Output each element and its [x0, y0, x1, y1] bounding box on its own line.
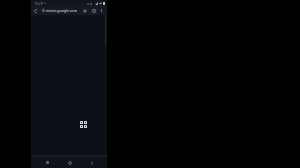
button[interactable]: Switch tabs	[90, 7, 97, 14]
button[interactable]: meets.google.com	[42, 6, 80, 15]
staticText: 3	[93, 9, 95, 13]
button[interactable]: Recent apps	[43, 158, 52, 167]
button[interactable]: New tab	[81, 7, 88, 14]
button[interactable]: Back	[87, 158, 96, 167]
staticText: 10:20	[34, 1, 43, 6]
button[interactable]: Reload	[32, 7, 39, 14]
button[interactable]: More options	[98, 7, 105, 14]
staticText: meets.google.com	[46, 8, 78, 13]
button[interactable]: Home	[65, 158, 74, 167]
